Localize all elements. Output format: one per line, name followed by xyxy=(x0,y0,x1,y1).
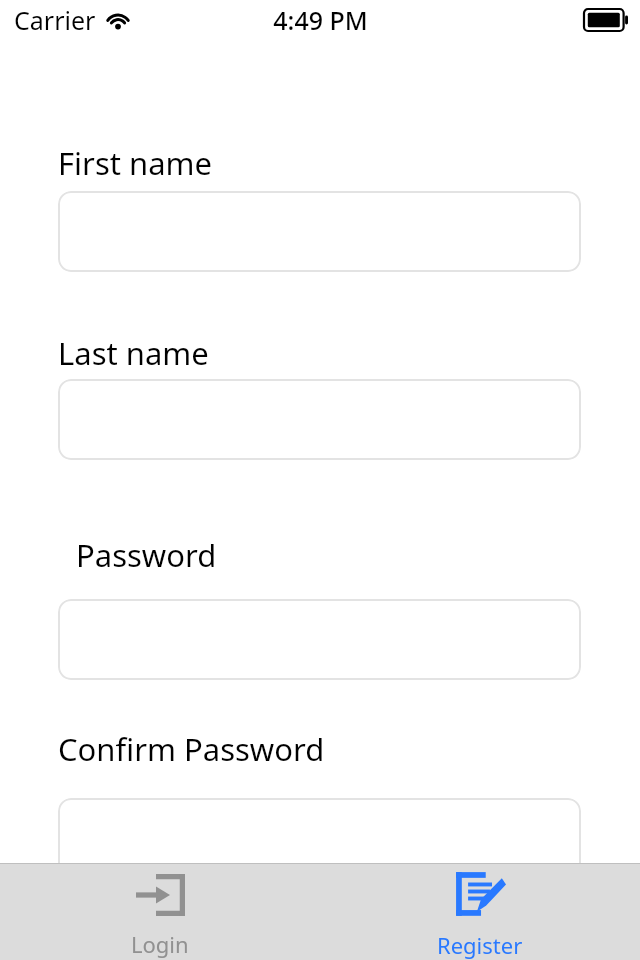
staticText: Carrier xyxy=(14,3,96,37)
staticText: First name xyxy=(58,142,213,184)
staticText: Confirm Password xyxy=(58,728,325,770)
button[interactable] xyxy=(58,599,581,680)
staticText: Login xyxy=(131,929,189,959)
button[interactable] xyxy=(58,191,581,272)
button[interactable] xyxy=(58,379,581,460)
button[interactable]: Login xyxy=(0,864,320,960)
button[interactable] xyxy=(58,798,581,879)
staticText: Register xyxy=(437,930,523,960)
staticText: 4:49 PM xyxy=(273,3,368,37)
staticText: Password xyxy=(76,534,217,576)
staticText: Last name xyxy=(58,332,209,374)
button[interactable]: Register xyxy=(320,864,640,960)
